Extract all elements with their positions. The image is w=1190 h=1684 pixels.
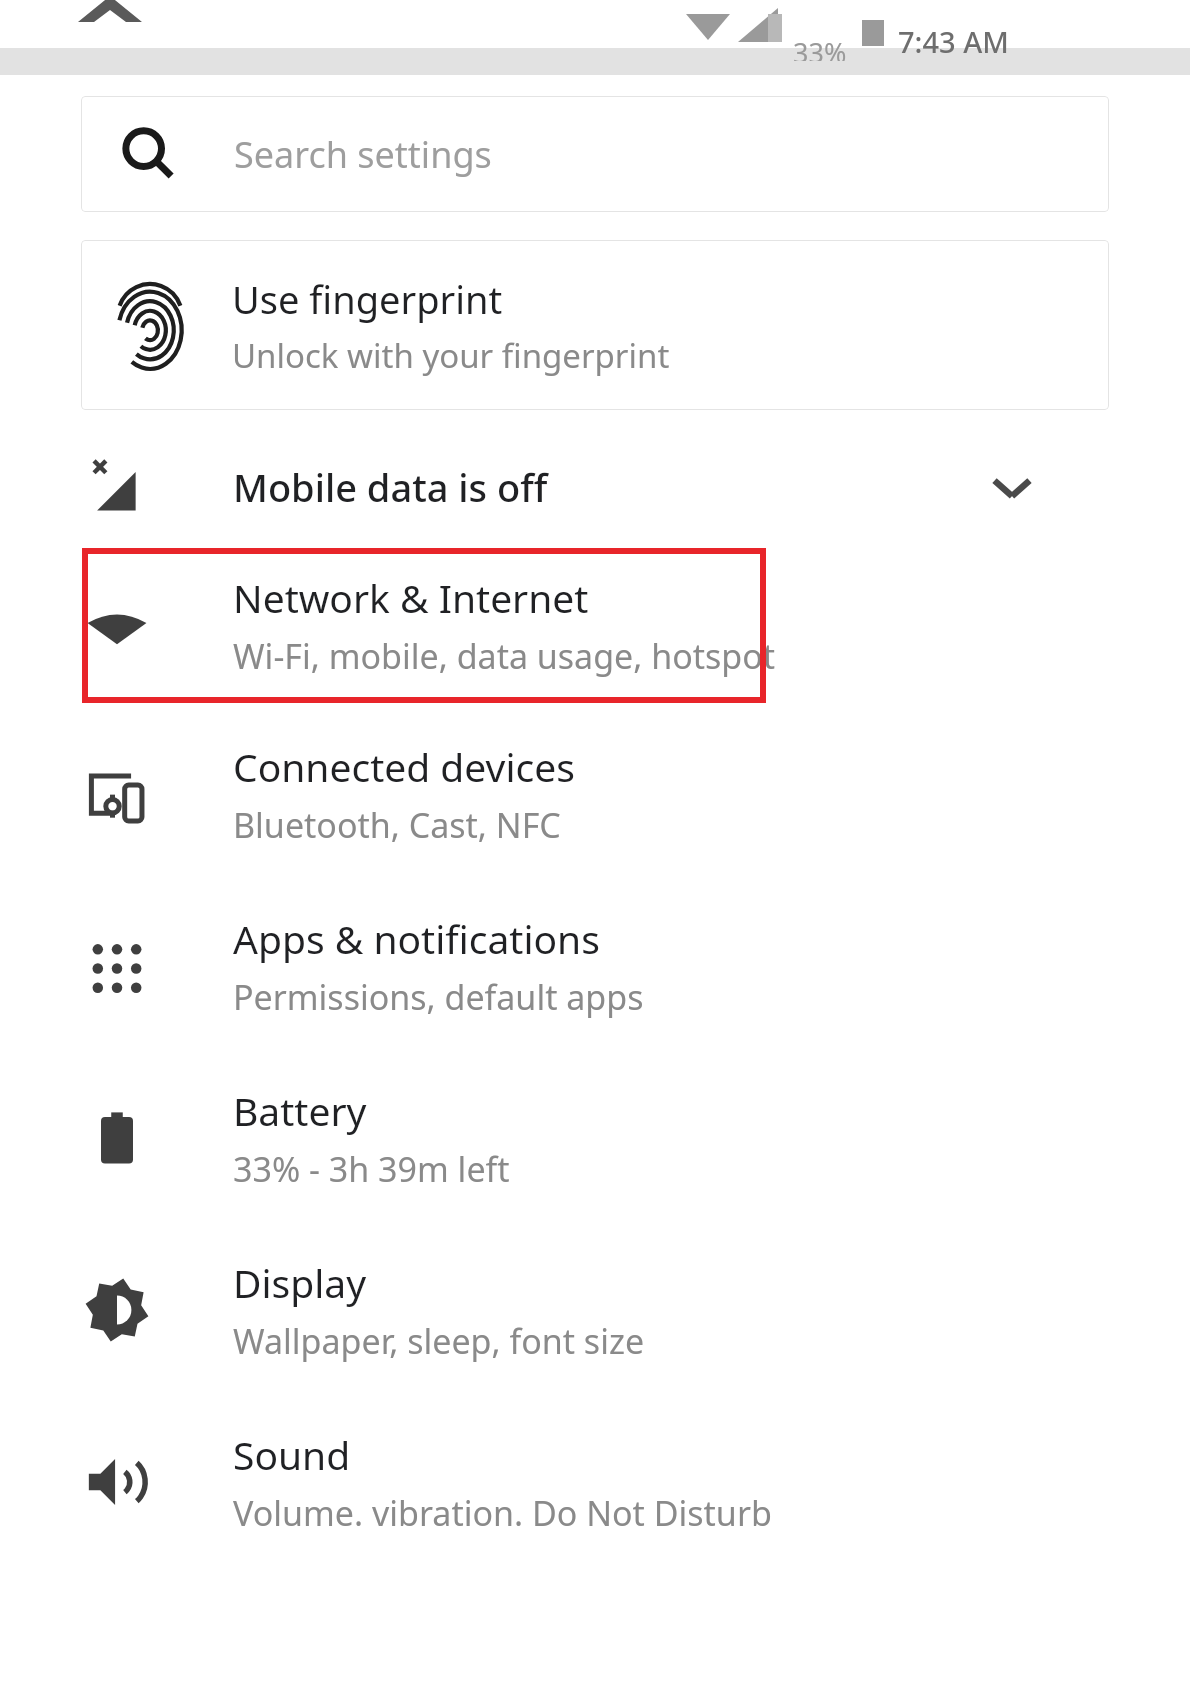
staticText: Permissions, default apps: [233, 974, 644, 1020]
staticText: Sound: [233, 1428, 351, 1481]
staticText: Apps & notifications: [233, 912, 600, 965]
staticText: Connected devices: [233, 740, 575, 793]
button[interactable]: Expand: [984, 459, 1040, 515]
button[interactable]: Battery: [0, 1052, 1190, 1224]
staticText: Wallpaper, sleep, font size: [233, 1318, 645, 1364]
staticText: Wi-Fi, mobile, data usage, hotspot: [233, 633, 776, 679]
button[interactable]: Sound: [0, 1396, 1190, 1568]
staticText: Unlock with your fingerprint: [232, 333, 670, 378]
button[interactable]: Use fingerprint: [81, 240, 1109, 410]
button[interactable]: Search settings: [81, 96, 1109, 212]
staticText: 7:43 AM: [898, 22, 1009, 61]
button[interactable]: Display: [0, 1224, 1190, 1396]
button[interactable]: Apps & notifications: [0, 880, 1190, 1052]
staticText: Bluetooth, Cast, NFC: [233, 802, 561, 848]
staticText: Network & Internet: [233, 571, 589, 624]
staticText: Volume. vibration. Do Not Disturb: [233, 1490, 772, 1536]
staticText: 33%: [793, 34, 847, 61]
staticText: Use fingerprint: [232, 273, 503, 325]
staticText: Mobile data is off: [233, 461, 984, 513]
button[interactable]: Mobile data is off: [0, 432, 1190, 542]
staticText: Display: [233, 1256, 367, 1309]
button[interactable]: Network & Internet: [0, 542, 1190, 708]
button[interactable]: Connected devices: [0, 708, 1190, 880]
staticText: Search settings: [234, 130, 492, 179]
staticText: Battery: [233, 1084, 367, 1137]
staticText: 33% - 3h 39m left: [233, 1146, 510, 1192]
